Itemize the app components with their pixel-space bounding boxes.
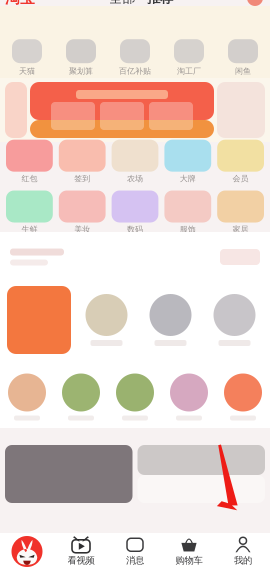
button[interactable]: 消息	[108, 537, 162, 566]
button[interactable]	[54, 373, 108, 420]
button[interactable]: 生鲜	[6, 190, 53, 234]
button[interactable]: 大牌	[164, 140, 211, 183]
button[interactable]: 签到	[59, 140, 106, 183]
staticText: 百亿补贴	[119, 66, 151, 76]
staticText: 聚划算	[69, 66, 93, 76]
staticText: 红包	[21, 174, 37, 183]
staticText: 闲鱼	[235, 66, 251, 76]
button[interactable]: 聚划算	[54, 39, 108, 76]
button[interactable]: 红包	[6, 140, 53, 183]
staticText: 农场	[127, 174, 143, 183]
button[interactable]	[10, 248, 64, 265]
button[interactable]: 服饰	[164, 190, 211, 234]
button[interactable]: 数码	[112, 190, 158, 234]
button[interactable]	[0, 373, 54, 420]
button[interactable]: 购物车	[162, 537, 216, 566]
button[interactable]	[162, 373, 216, 420]
staticText: 会员	[233, 174, 249, 183]
staticText: 美妆	[74, 224, 90, 234]
button[interactable]: 淘宝	[0, 0, 35, 12]
button[interactable]	[216, 373, 270, 420]
button[interactable]: 会员	[217, 140, 264, 183]
staticText: 购物车	[175, 555, 202, 566]
staticText: 数码	[127, 224, 143, 234]
staticText: 全部	[109, 0, 135, 6]
button[interactable]: 淘工厂	[162, 39, 216, 76]
staticText: 淘工厂	[177, 66, 201, 76]
button[interactable]: 我的	[216, 537, 270, 566]
staticText: 生鲜	[21, 224, 37, 234]
staticText: 看视频	[67, 555, 94, 566]
button[interactable]: More	[220, 249, 260, 265]
button[interactable]: Live stream	[5, 445, 132, 503]
staticText: 我的	[234, 555, 252, 566]
button[interactable]: 看视频	[54, 537, 108, 566]
staticText: 家居	[233, 224, 249, 234]
button[interactable]: 家居	[217, 190, 264, 234]
button[interactable]: 美妆	[59, 190, 106, 234]
staticText: 大牌	[180, 174, 196, 183]
staticText: 消息	[126, 555, 144, 566]
button[interactable]	[142, 294, 199, 346]
button[interactable]: Home	[0, 533, 54, 570]
staticText: 签到	[74, 174, 90, 183]
button[interactable]: 闲鱼	[216, 39, 270, 76]
button[interactable]	[206, 294, 263, 346]
button[interactable]: Main promotion	[30, 82, 214, 138]
staticText: 天猫	[19, 66, 35, 76]
button[interactable]: Account	[247, 0, 270, 11]
button[interactable]: Product	[137, 445, 265, 503]
button[interactable]: 推荐	[135, 0, 173, 11]
button[interactable]: Previous promotion	[5, 82, 27, 138]
staticText: 服饰	[180, 224, 196, 234]
button[interactable]: 全部	[109, 0, 135, 11]
button[interactable]	[108, 373, 162, 420]
staticText: 推荐	[147, 0, 173, 6]
button[interactable]: Flash sale	[7, 286, 71, 354]
button[interactable]: 天猫	[0, 39, 54, 76]
staticText: 淘宝	[5, 0, 35, 7]
button[interactable]: 百亿补贴	[108, 39, 162, 76]
button[interactable]: 农场	[112, 140, 158, 183]
button[interactable]	[78, 294, 135, 346]
